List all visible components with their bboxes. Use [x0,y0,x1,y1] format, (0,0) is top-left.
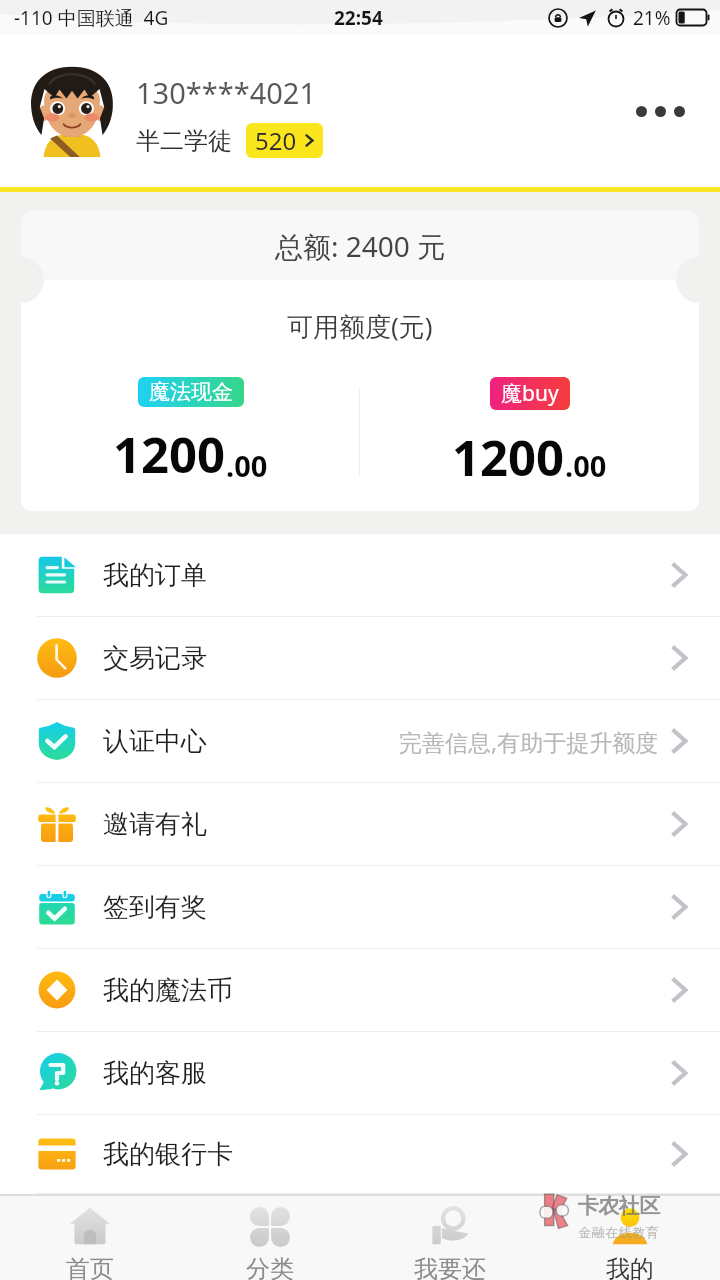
staticText: .00 [565,446,607,485]
staticText: 21% [633,5,671,31]
staticText: 签到有奖 [103,891,207,924]
staticText: 1200 [113,421,226,487]
button[interactable]: 我的订单 [0,534,720,617]
staticText: 可用额度(元) [287,308,433,344]
staticText: 我的订单 [103,559,207,592]
button[interactable]: 邀请有礼 [0,783,720,866]
staticText: 半二学徒 [136,126,232,156]
staticText: 我的魔法币 [103,974,233,1007]
staticText: 我的客服 [103,1057,207,1090]
button[interactable]: 520 [246,123,323,158]
staticText: 金融在线教育 [578,1224,659,1240]
button[interactable]: 我要还 [360,1196,540,1280]
staticText: -110 中国联通 4G [14,5,169,31]
button[interactable]: 交易记录 [0,617,720,700]
staticText: 邀请有礼 [103,808,207,841]
staticText: 魔buy [501,379,559,408]
staticText: 520 [255,124,297,157]
staticText: 分类 [246,1254,294,1280]
button[interactable]: 签到有奖 [0,866,720,949]
staticText: 卡农社区 [578,1193,660,1219]
button[interactable]: More options [624,75,696,147]
staticText: 我的银行卡 [103,1138,233,1171]
staticText: 魔法现金 [149,379,233,405]
staticText: 首页 [66,1254,114,1280]
button[interactable]: 认证中心 [0,700,720,783]
staticText: .00 [226,446,268,485]
button[interactable]: 我的魔法币 [0,949,720,1032]
staticText: 22:54 [334,5,383,31]
staticText: 认证中心 [103,725,207,758]
staticText: 交易记录 [103,642,207,675]
staticText: 完善信息,有助于提升额度 [399,726,659,757]
button[interactable]: 分类 [180,1196,360,1280]
button[interactable]: 我的客服 [0,1032,720,1115]
button[interactable]: 首页 [0,1196,180,1280]
staticText: 我的 [606,1254,654,1280]
staticText: 我要还 [414,1254,486,1280]
staticText: 1200 [452,424,565,487]
button[interactable]: 我的 [540,1196,720,1280]
button[interactable]: 我的银行卡 [0,1115,720,1194]
staticText: 总额: 2400 元 [275,227,446,265]
staticText: 130****4021 [136,73,317,112]
